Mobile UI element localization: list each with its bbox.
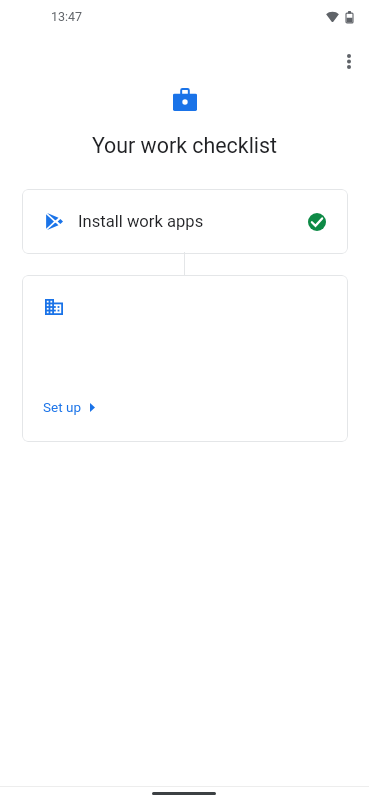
button[interactable]: Set up xyxy=(43,399,95,415)
staticText: 13:47 xyxy=(51,9,83,24)
button[interactable]: More options xyxy=(330,42,368,80)
staticText: Install work apps xyxy=(78,212,204,231)
staticText: Your work checklist xyxy=(0,133,369,158)
staticText: Set up xyxy=(43,399,81,415)
button[interactable]: Install work apps xyxy=(22,189,348,254)
